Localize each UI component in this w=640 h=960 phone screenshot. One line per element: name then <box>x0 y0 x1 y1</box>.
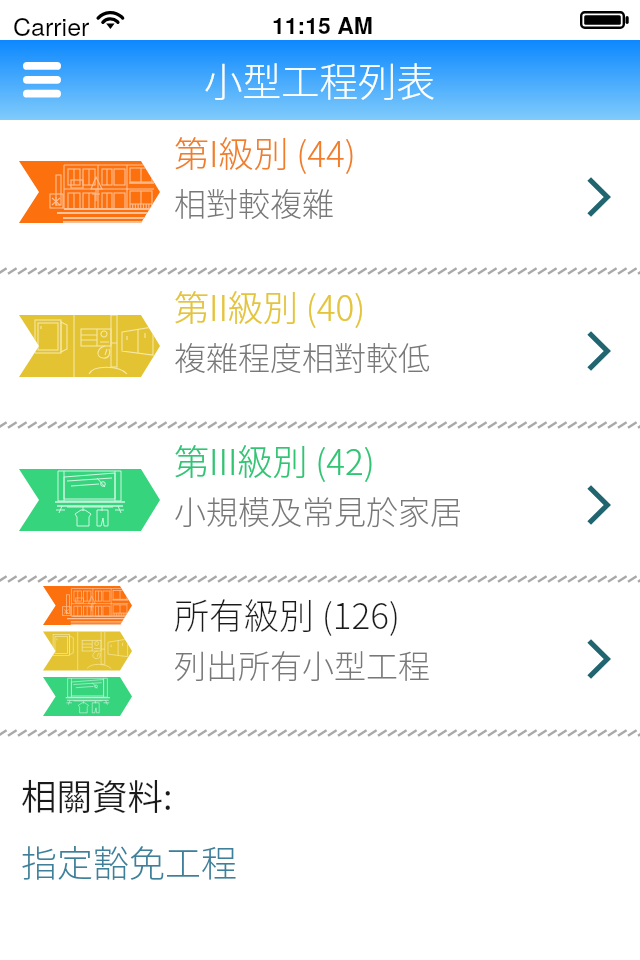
other: Open <box>583 329 609 373</box>
other: Open <box>583 175 609 219</box>
button[interactable]: 第III級別 (42) <box>0 428 640 574</box>
staticText: 小型工程列表 <box>204 51 436 107</box>
button[interactable]: 所有級別 (126) <box>0 582 640 728</box>
staticText: 所有級別 (126) <box>174 588 400 639</box>
button[interactable]: 指定豁免工程 <box>21 835 238 887</box>
staticText: 小規模及常見於家居 <box>174 487 463 533</box>
staticText: 相對較複雜 <box>174 179 335 225</box>
other: Open <box>583 637 609 681</box>
staticText: 複雜程度相對較低 <box>174 333 431 379</box>
staticText: 第I級別 (44) <box>174 126 356 177</box>
button[interactable]: 第I級別 (44) <box>0 120 640 266</box>
other: Open <box>583 483 609 527</box>
staticText: 列出所有小型工程 <box>174 641 431 687</box>
staticText: Carrier <box>13 7 90 43</box>
staticText: 相關資料: <box>21 769 173 820</box>
staticText: 第III級別 (42) <box>174 434 375 485</box>
button[interactable]: 第II級別 (40) <box>0 274 640 420</box>
staticText: 第II級別 (40) <box>174 280 366 331</box>
button[interactable]: Menu <box>7 47 76 113</box>
staticText: 11:15 AM <box>272 8 373 41</box>
